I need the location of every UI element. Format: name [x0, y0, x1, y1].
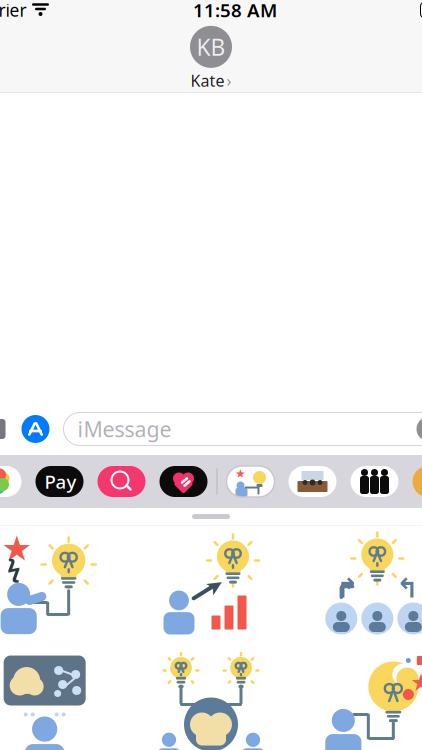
staticText: iMessage [77, 415, 171, 443]
staticText: ★ [1, 529, 32, 568]
staticText: ➤ [206, 573, 224, 598]
button[interactable]: App Store [18, 412, 52, 446]
button[interactable]: Idea sticker 1 [0, 530, 128, 642]
button[interactable]: Photos [0, 466, 21, 497]
button[interactable]: Dictate [413, 414, 422, 444]
staticText: ★ [410, 669, 422, 696]
button[interactable]: Apple Pay [35, 466, 83, 497]
staticText: ↱ [336, 573, 358, 604]
button[interactable]: People stickers [350, 466, 398, 497]
staticText: Pay [44, 469, 76, 494]
button[interactable]: Digital Touch [159, 466, 207, 497]
staticText: ★ [235, 467, 246, 480]
staticText: Kate [190, 70, 224, 91]
button[interactable]: Idea stickers [226, 466, 274, 497]
staticText: › [226, 70, 231, 91]
button[interactable]: Images [97, 466, 145, 497]
button[interactable]: Idea sticker 6 [294, 648, 422, 750]
staticText: Carrier [0, 0, 26, 21]
staticText: ↰ [396, 573, 418, 604]
button[interactable]: Meeting stickers [288, 466, 336, 497]
staticText: KB [196, 32, 225, 62]
button[interactable]: Idea sticker 5 [128, 648, 294, 750]
button[interactable]: Camera [0, 414, 7, 444]
button[interactable]: More stickers [412, 466, 422, 497]
button[interactable]: Kate, details [190, 22, 232, 91]
button[interactable]: Idea sticker 2 [128, 530, 294, 642]
button[interactable]: Idea sticker 3 [294, 530, 422, 642]
staticText: ϟ [7, 552, 20, 583]
staticText: 11:58 AM [193, 0, 277, 22]
button[interactable]: Idea sticker 4 [0, 648, 128, 750]
